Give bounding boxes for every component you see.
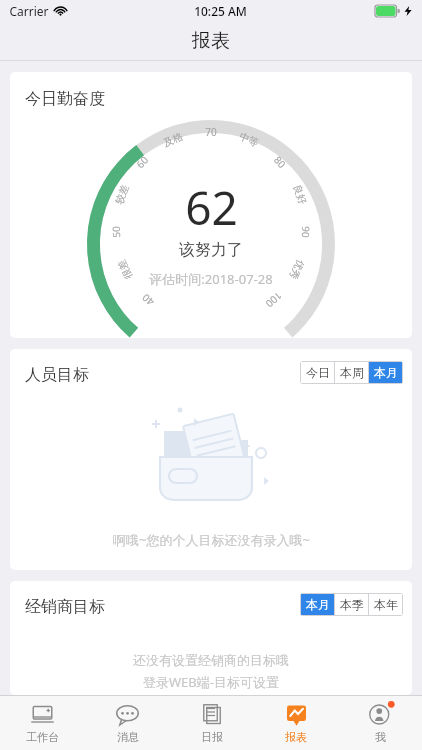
staticText: 本周: [340, 365, 364, 380]
other: 工作台: [30, 702, 55, 727]
staticText: 本月: [374, 365, 398, 380]
staticText: 该努力了: [179, 240, 243, 260]
staticText: 很差: [115, 258, 135, 281]
staticText: 日报: [201, 730, 223, 744]
staticText: 优秀: [287, 258, 307, 281]
other: 消息: [115, 702, 140, 727]
button[interactable]: 本年: [369, 594, 402, 615]
staticText: 报表: [192, 29, 230, 53]
staticText: 良好: [290, 183, 310, 206]
button[interactable]: 消息: [85, 696, 170, 750]
staticText: 还没有设置经销商的目标哦: [133, 652, 289, 668]
staticText: 本月: [306, 597, 330, 612]
button[interactable]: 本季: [335, 594, 368, 615]
staticText: 报表: [285, 730, 307, 744]
staticText: 90: [299, 226, 313, 238]
staticText: 及格: [161, 130, 185, 149]
staticText: 工作台: [26, 730, 59, 744]
staticText: 消息: [117, 730, 139, 744]
staticText: 本年: [374, 597, 398, 612]
other: 日报: [200, 702, 225, 727]
staticText: 50: [109, 226, 123, 238]
button[interactable]: 工作台: [0, 696, 85, 750]
staticText: 本季: [340, 597, 364, 612]
button[interactable]: 报表: [254, 696, 338, 750]
staticText: 40: [139, 291, 157, 309]
staticText: 评估时间:2018-07-28: [149, 270, 273, 288]
staticText: 较差: [112, 183, 132, 206]
other: 我: [368, 702, 393, 727]
staticText: 80: [271, 153, 289, 171]
button[interactable]: 本月: [301, 594, 334, 615]
staticText: 登录WEB端-目标可设置: [143, 673, 279, 691]
other: 报表: [284, 702, 309, 727]
button[interactable]: 本周: [335, 362, 368, 383]
staticText: 70: [205, 125, 217, 139]
staticText: 人员目标: [25, 365, 89, 385]
staticText: 中等: [237, 130, 261, 149]
staticText: 我: [375, 730, 386, 744]
staticText: 100: [263, 289, 285, 311]
staticText: 啊哦~您的个人目标还没有录入哦~: [113, 531, 310, 549]
button[interactable]: 本月: [369, 362, 402, 383]
staticText: 10:25 AM: [194, 3, 247, 19]
staticText: 今日: [306, 365, 330, 380]
button[interactable]: 我: [338, 696, 422, 750]
staticText: 62: [185, 176, 238, 239]
button[interactable]: 日报: [170, 696, 254, 750]
staticText: 经销商目标: [25, 597, 105, 617]
button[interactable]: 今日: [301, 362, 334, 383]
staticText: Carrier: [9, 3, 49, 19]
staticText: 今日勤奋度: [25, 89, 105, 109]
staticText: 60: [133, 153, 151, 171]
